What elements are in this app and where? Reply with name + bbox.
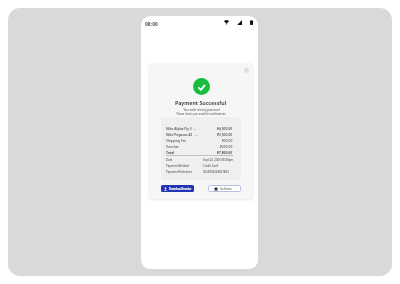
staticText: Your order is being processed [183, 108, 220, 111]
staticText: 08:00 [145, 21, 158, 28]
staticText: Download Invoice [169, 187, 192, 191]
staticText: Date [166, 158, 173, 162]
staticText: x1 [194, 127, 197, 130]
button[interactable]: Close [241, 65, 251, 75]
staticText: Nike Pegasus 42 [166, 132, 193, 136]
staticText: x1 [195, 133, 198, 136]
staticText: Payment Reference [166, 170, 193, 174]
staticText: Payment Method [166, 164, 190, 168]
staticText: Please check your email for notification… [176, 112, 226, 115]
staticText: ₱50.00 [222, 138, 233, 142]
staticText: Nike Alpha Fly 3 [166, 126, 192, 130]
staticText: ₱4,500.00 [217, 126, 233, 130]
staticText: Sept 22, 2025 08:30pm [203, 158, 233, 162]
button[interactable]: Go Home [208, 185, 241, 192]
staticText: Payment Successful [175, 99, 227, 106]
staticText: 2025092204567843 [203, 170, 229, 174]
staticText: Total [166, 150, 175, 154]
button[interactable]: Download Invoice [161, 185, 194, 192]
staticText: ₱7,800.00 [217, 150, 233, 154]
staticText: -₱250.00 [219, 144, 233, 148]
staticText: Shipping Fee [166, 138, 187, 142]
staticText: Voucher [166, 144, 180, 148]
staticText: Credit Card [203, 164, 219, 168]
staticText: ₱3,500.00 [217, 132, 233, 136]
staticText: Go Home [220, 187, 232, 191]
